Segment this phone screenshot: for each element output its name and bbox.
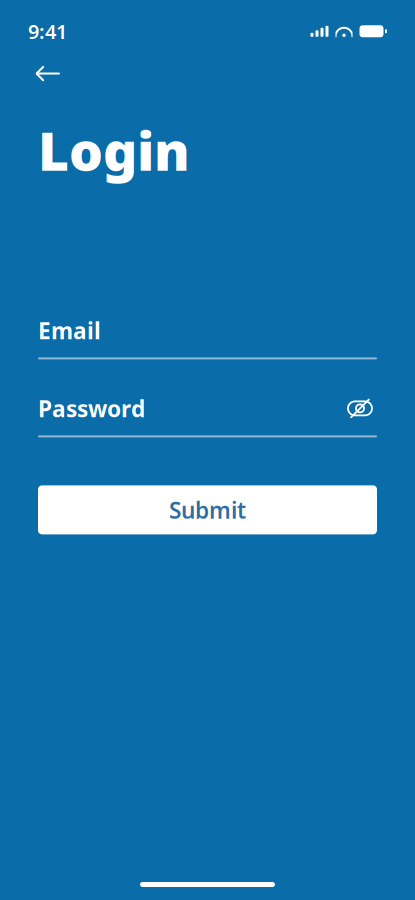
staticText: Submit: [169, 495, 246, 525]
staticText: Password: [38, 393, 145, 423]
button[interactable]: Show password: [343, 395, 377, 421]
staticText: 9:41: [28, 18, 67, 45]
staticText: Email: [38, 315, 101, 345]
button[interactable]: Submit: [38, 485, 377, 534]
staticText: Login: [38, 115, 190, 185]
button[interactable]: Back: [26, 57, 70, 91]
